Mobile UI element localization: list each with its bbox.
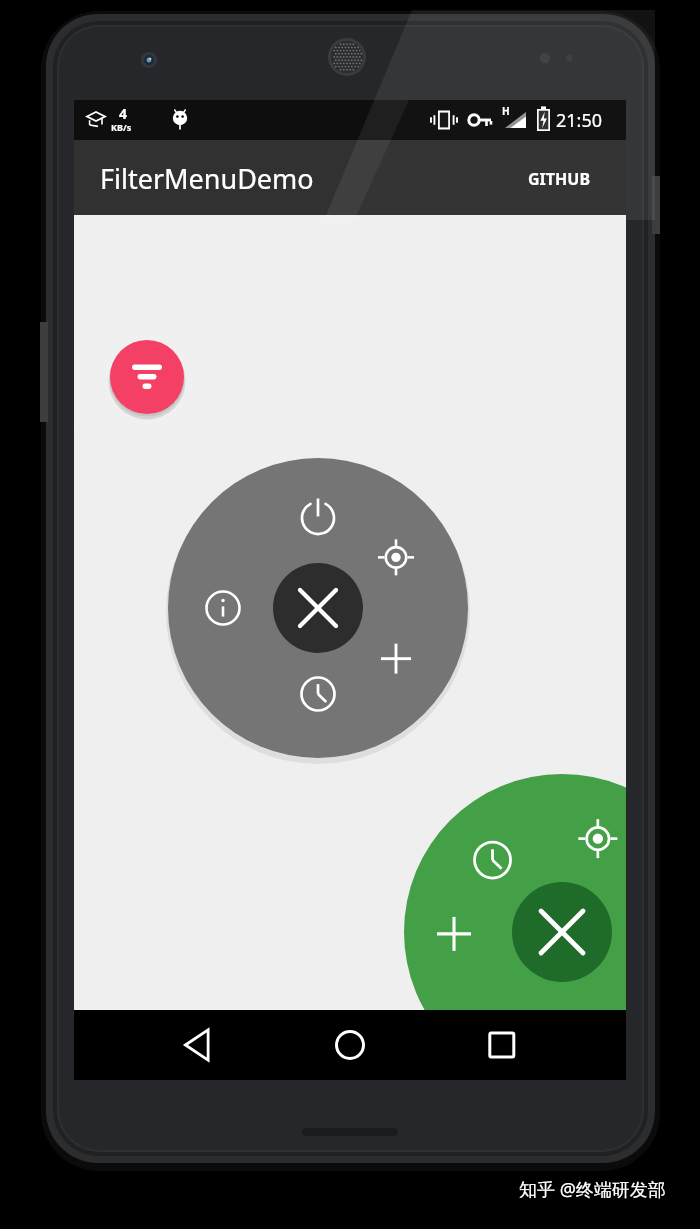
button[interactable]: Add	[374, 637, 418, 681]
staticText: H	[502, 104, 510, 118]
button[interactable]: Recent	[469, 836, 517, 884]
button[interactable]: Location	[574, 814, 622, 862]
staticText: 4	[119, 104, 128, 123]
staticText: KB/s	[111, 121, 132, 133]
button[interactable]: Recent	[296, 672, 340, 716]
button[interactable]: Close menu	[512, 882, 612, 982]
button[interactable]: Location	[374, 535, 418, 579]
button[interactable]: Filter menu	[110, 340, 184, 414]
staticText: FilterMenuDemo	[100, 160, 314, 197]
button[interactable]: Home	[318, 1013, 382, 1077]
button[interactable]: Back	[166, 1013, 230, 1077]
button[interactable]: Close menu	[273, 563, 363, 653]
staticText: 知乎 @终端研发部	[519, 1177, 666, 1202]
button[interactable]: Power	[296, 496, 340, 540]
button[interactable]: Recents	[470, 1013, 534, 1077]
staticText: GITHUB	[528, 168, 591, 190]
button[interactable]: GITHUB	[518, 154, 614, 202]
button[interactable]: Info	[201, 586, 245, 630]
staticText: 21:50	[556, 108, 603, 133]
button[interactable]: Add	[430, 908, 478, 956]
